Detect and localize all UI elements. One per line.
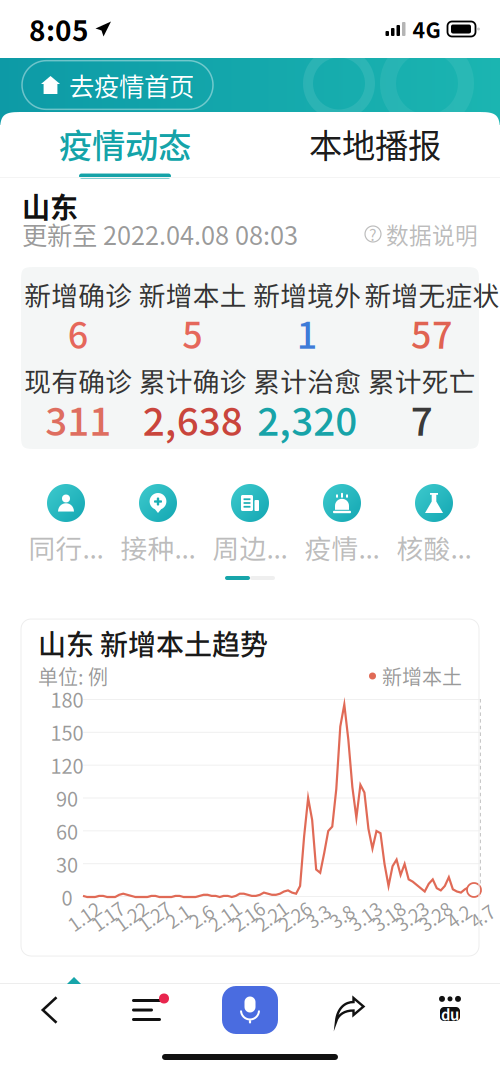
- staticText: 新增无症状: [364, 275, 499, 313]
- staticText: 7: [411, 391, 433, 447]
- staticText: 1.17: [90, 902, 125, 929]
- button[interactable]: 同行...: [20, 484, 112, 560]
- staticText: 0: [61, 882, 72, 911]
- staticText: 周边...: [212, 528, 287, 566]
- staticText: 180: [50, 684, 83, 713]
- button[interactable]: 返回: [0, 984, 100, 1036]
- staticText: 3.23: [394, 902, 429, 929]
- button[interactable]: ?: [365, 220, 478, 248]
- staticText: 数据说明: [386, 218, 478, 250]
- staticText: 4.2: [446, 902, 471, 929]
- staticText: 新增确诊: [24, 275, 132, 313]
- staticText: 6: [68, 307, 89, 359]
- staticText: 2,320: [257, 391, 357, 447]
- staticText: 3.13: [347, 902, 382, 929]
- staticText: ?: [369, 222, 377, 246]
- staticText: 4.7: [469, 902, 494, 929]
- staticText: 3.3: [306, 902, 331, 929]
- staticText: 山东: [22, 186, 78, 226]
- staticText: 新增境外: [253, 275, 361, 313]
- staticText: 核酸...: [396, 528, 471, 566]
- staticText: 3.28: [418, 902, 453, 929]
- button[interactable]: 百度: [400, 984, 500, 1036]
- button[interactable]: 疫情...: [296, 484, 388, 560]
- staticText: 2.1: [165, 902, 190, 929]
- staticText: du: [441, 1003, 459, 1025]
- staticText: 57: [411, 307, 453, 359]
- staticText: 2.21: [254, 902, 289, 929]
- staticText: 3.18: [371, 902, 406, 929]
- staticText: 2.16: [230, 902, 265, 929]
- staticText: 累计治愈: [253, 361, 361, 399]
- staticText: 2.11: [207, 902, 242, 929]
- staticText: 8:05: [29, 9, 89, 49]
- staticText: 3.8: [329, 902, 354, 929]
- staticText: 单位: 例: [38, 661, 108, 690]
- staticText: 1: [297, 307, 318, 359]
- button[interactable]: 去疫情首页: [22, 61, 213, 109]
- staticText: 1.27: [137, 902, 172, 929]
- button[interactable]: 核酸...: [388, 484, 480, 560]
- button[interactable]: 语音搜索: [200, 984, 300, 1036]
- staticText: 山东 新增本土趋势: [38, 623, 268, 663]
- staticText: 疫情动态: [59, 119, 191, 168]
- staticText: 接种...: [120, 528, 195, 566]
- staticText: 本地播报: [309, 119, 441, 168]
- button[interactable]: 分享: [300, 984, 400, 1036]
- staticText: 新增本土: [139, 275, 247, 313]
- staticText: 60: [56, 816, 78, 845]
- staticText: 30: [56, 849, 78, 878]
- button[interactable]: 周边...: [204, 484, 296, 560]
- staticText: 累计死亡: [368, 361, 476, 399]
- staticText: 2,638: [143, 391, 243, 447]
- staticText: 1.12: [66, 902, 101, 929]
- staticText: 2.6: [189, 902, 214, 929]
- staticText: 同行...: [28, 528, 103, 566]
- staticText: 现有确诊: [24, 361, 132, 399]
- staticText: 疫情...: [304, 528, 379, 566]
- button[interactable]: 菜单: [100, 984, 200, 1036]
- staticText: 1.22: [113, 902, 148, 929]
- staticText: 311: [45, 391, 111, 447]
- staticText: 4G: [412, 14, 440, 44]
- staticText: 去疫情首页: [69, 67, 194, 103]
- staticText: 150: [50, 717, 83, 746]
- button[interactable]: 疫情动态: [0, 124, 250, 178]
- button[interactable]: 本地播报: [250, 124, 500, 178]
- staticText: 新增本土: [382, 661, 462, 690]
- staticText: 120: [50, 750, 83, 779]
- button[interactable]: 接种...: [112, 484, 204, 560]
- staticText: 90: [56, 783, 78, 812]
- staticText: 累计确诊: [139, 361, 247, 399]
- staticText: 5: [182, 307, 203, 359]
- staticText: 更新至 2022.04.08 08:03: [22, 216, 298, 252]
- staticText: 2.26: [277, 902, 312, 929]
